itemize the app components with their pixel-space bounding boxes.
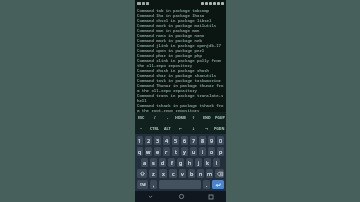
button[interactable]: v [179,169,186,178]
staticText: / [154,115,156,120]
button[interactable]: 4 [163,136,170,145]
staticText: hell [137,98,147,103]
button[interactable]: HOME [174,112,187,123]
staticText: f [171,159,173,166]
button[interactable]: b [188,169,195,178]
button[interactable]: o [208,147,215,156]
staticText: ~ [140,126,143,131]
button[interactable]: ~ [135,123,148,134]
button[interactable]: q [137,147,143,156]
staticText: m the x11-repo repository [137,88,197,93]
staticText: e [156,148,160,155]
button[interactable]: ESC [135,112,148,123]
button[interactable]: z [149,169,157,178]
button[interactable]: r [163,147,170,156]
staticText: Command man in package man [137,28,200,33]
staticText: CTRL [150,126,159,131]
staticText: i [202,148,204,155]
button[interactable]: w [145,147,152,156]
button[interactable]: g [177,158,184,167]
staticText: 6 [183,137,187,144]
button[interactable]: f [168,158,175,167]
button[interactable]: c [169,169,177,178]
button[interactable]: ← [174,123,187,134]
staticText: x [162,170,165,177]
staticText: Command jlink in package openjdk-17 [137,43,221,48]
button[interactable]: PGDN [213,123,226,134]
staticText: 8 [201,137,205,144]
button[interactable]: 5 [172,136,179,145]
button[interactable]: PGUP [213,112,226,123]
button[interactable]: Recent apps [196,191,226,202]
staticText: - [167,115,169,120]
staticText: Command zlink in package polly from [137,58,221,63]
button[interactable]: t [172,147,179,156]
staticText: a [143,159,147,166]
staticText: . [206,181,208,188]
button[interactable]: END [200,112,213,123]
button[interactable]: x [159,169,167,178]
button[interactable]: u [190,147,197,156]
button[interactable]: n [197,169,204,178]
staticText: ↓ [192,127,196,131]
staticText: Command lha in package lhasa [137,13,205,18]
staticText: 7 [192,137,196,144]
staticText: g [179,159,183,166]
button[interactable]: p [217,147,224,156]
button[interactable]: m [206,169,213,178]
staticText: Command shar in package sharutils [137,73,217,78]
staticText: Command mark in package mailutils [137,23,217,28]
button[interactable]: h [186,158,193,167]
button[interactable]: j [195,158,202,167]
button[interactable]: a [141,158,148,167]
button[interactable]: k [204,158,211,167]
staticText: ESC [138,115,145,120]
staticText: Command chsel in package libsel [137,18,212,23]
button[interactable]: ↓ [187,123,200,134]
button[interactable]: . [203,180,210,189]
button[interactable]: → [200,123,213,134]
button[interactable]: 7 [190,136,197,145]
button[interactable]: 3 [154,136,161,145]
staticText: HOME [175,115,186,120]
button[interactable]: , [150,180,157,189]
button[interactable]: 6 [181,136,188,145]
button[interactable]: Home [166,191,196,202]
button[interactable]: s [150,158,157,167]
button[interactable]: / [148,112,161,123]
button[interactable]: 2 [145,136,152,145]
button[interactable]: Key [137,169,147,178]
button[interactable]: Back [135,191,166,202]
other: Shift [137,169,147,178]
button[interactable]: !?# [137,180,148,189]
staticText: Command tshark in package tshark fro [137,103,224,108]
button[interactable]: CTRL [148,123,161,134]
button[interactable]: Key [215,169,224,178]
staticText: j [198,159,200,166]
button[interactable]: y [181,147,188,156]
staticText: t [175,148,177,155]
staticText: PGUP [215,115,225,120]
button[interactable]: - [161,112,174,123]
staticText: Command Thunar in package thunar fro [137,83,224,88]
button[interactable]: d [159,158,166,167]
staticText: p [219,148,223,155]
button[interactable]: 9 [208,136,215,145]
staticText: 2 [147,137,151,144]
button[interactable]: ↑ [187,112,200,123]
button[interactable]: Key [212,180,224,189]
staticText: s [152,159,155,166]
staticText: o [210,148,214,155]
button[interactable]: l [213,158,220,167]
button[interactable]: ALT [161,123,174,134]
staticText: !?# [140,182,146,188]
button[interactable]: 0 [217,136,224,145]
staticText: h [188,159,192,166]
button[interactable]: e [154,147,161,156]
staticText: q [138,148,142,155]
button[interactable]: 8 [199,136,206,145]
button[interactable]: 1 [137,136,143,145]
button[interactable]: i [199,147,206,156]
